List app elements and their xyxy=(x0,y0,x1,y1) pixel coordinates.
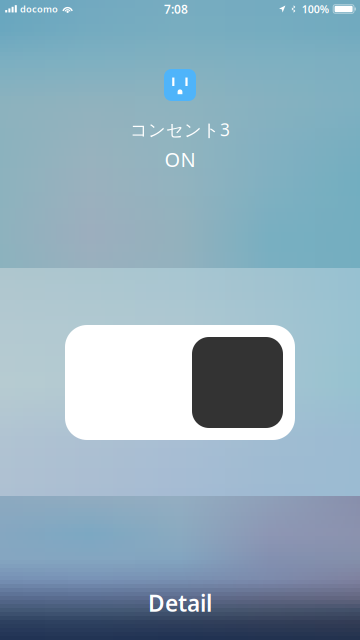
button[interactable]: Detail xyxy=(0,579,360,627)
staticText: Detail xyxy=(148,588,212,618)
staticText: ON xyxy=(164,146,195,173)
staticText: 100% xyxy=(302,2,329,16)
button[interactable] xyxy=(65,325,295,440)
staticText: コンセント3 xyxy=(130,118,230,141)
staticText: docomo xyxy=(20,3,58,15)
staticText: 7:08 xyxy=(164,1,188,17)
